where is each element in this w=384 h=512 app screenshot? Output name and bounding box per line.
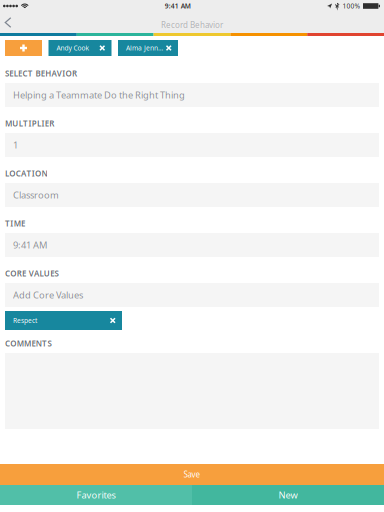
staticText: Respect — [13, 316, 37, 325]
staticText: Record Behavior — [161, 20, 223, 30]
button[interactable]: Favorites — [0, 485, 192, 505]
staticText: Favorites — [76, 489, 115, 501]
staticText: 9:41 AM — [13, 239, 47, 251]
staticText: 9:41 AM — [165, 2, 191, 10]
button[interactable]: Back — [0, 12, 16, 33]
button[interactable]: Helping a Teammate Do the Right Thing — [5, 83, 379, 107]
staticText: Classroom — [13, 189, 59, 201]
button[interactable]: Respect — [5, 311, 122, 330]
staticText: CORE VALUES — [5, 268, 58, 279]
staticText: MULTIPLIER — [5, 118, 54, 129]
staticText: Helping a Teammate Do the Right Thing — [13, 89, 185, 101]
button[interactable]: Add recipient — [5, 40, 42, 56]
staticText: TIME — [5, 218, 25, 229]
staticText: Add Core Values — [13, 289, 83, 301]
button[interactable]: 9:41 AM — [5, 233, 379, 257]
button[interactable]: New — [192, 485, 384, 505]
staticText: LOCATION — [5, 168, 47, 179]
staticText: Alma Jenn… — [126, 44, 162, 52]
staticText: COMMENTS — [5, 338, 51, 349]
staticText: Save — [183, 469, 200, 480]
button[interactable]: Classroom — [5, 183, 379, 207]
button[interactable]: Add Core Values — [5, 283, 379, 307]
button[interactable]: Andy Cook — [48, 40, 111, 56]
staticText: New — [278, 489, 297, 501]
staticText: 1 — [13, 139, 18, 151]
staticText: Andy Cook — [56, 44, 89, 52]
button[interactable]: Save — [0, 464, 384, 485]
staticText: 100% — [342, 2, 360, 10]
staticText: SELECT BEHAVIOR — [5, 68, 77, 79]
button[interactable]: Alma Jenn… — [118, 40, 178, 56]
